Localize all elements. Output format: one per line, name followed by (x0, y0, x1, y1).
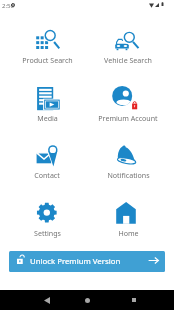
staticText: Product Search (22, 55, 73, 65)
staticText: Settings (34, 228, 61, 238)
staticText: Premium Account (98, 113, 158, 123)
staticText: Contact (34, 170, 60, 180)
button[interactable]: Premium Account (88, 87, 168, 129)
button[interactable]: Recent apps (115, 290, 153, 310)
button[interactable]: Media (7, 87, 87, 129)
button[interactable]: Home (88, 202, 168, 244)
staticText: Notifications (107, 170, 150, 180)
staticText: Unlock Premium Version (30, 256, 121, 267)
button[interactable]: Notifications (88, 144, 168, 186)
button[interactable]: Settings (7, 202, 87, 244)
button[interactable]: Product Search (7, 29, 87, 71)
button[interactable]: Back (28, 290, 66, 310)
button[interactable]: Contact (7, 144, 87, 186)
staticText: 2:56 (2, 2, 14, 10)
staticText: Vehicle Search (104, 55, 152, 65)
staticText: Home (118, 228, 139, 238)
button[interactable]: Unlock Premium Version (9, 251, 165, 272)
staticText: Media (37, 113, 58, 123)
button[interactable]: Vehicle Search (88, 29, 168, 71)
button[interactable]: Home (68, 290, 106, 310)
